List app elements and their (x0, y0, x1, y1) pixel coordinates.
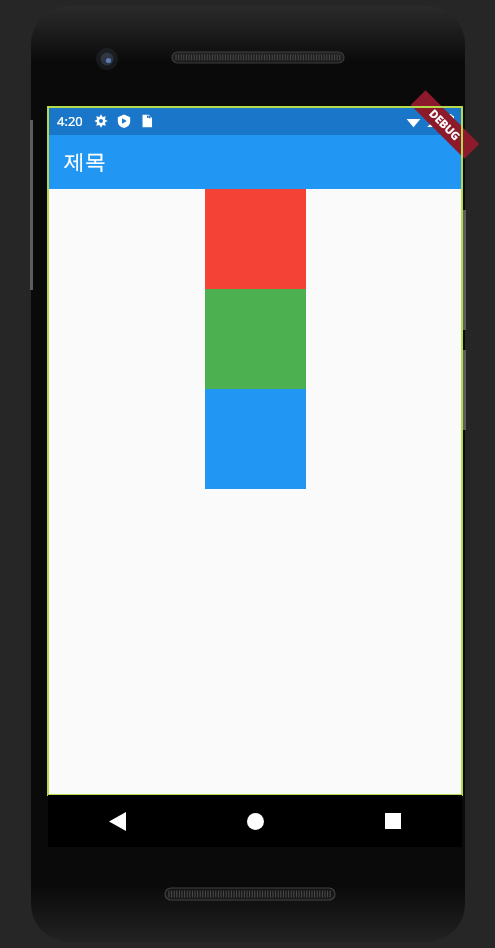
button[interactable]: Back (48, 795, 186, 847)
button[interactable]: Home (186, 795, 324, 847)
staticText: 4:20 (57, 112, 83, 130)
staticText: 제목 (64, 149, 106, 175)
button[interactable]: Recent apps (324, 795, 462, 847)
staticText: DEBUG (426, 106, 464, 143)
